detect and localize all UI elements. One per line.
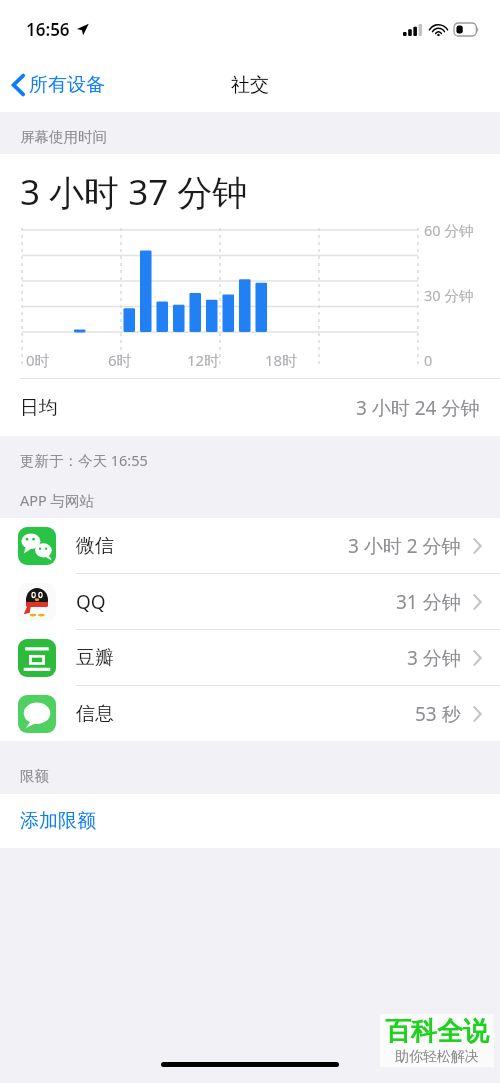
staticText: 3 小时 37 分钟	[20, 168, 248, 216]
staticText: 6时	[108, 350, 132, 370]
staticText: 助你轻松解决	[395, 1048, 479, 1066]
other: WeChat	[18, 527, 56, 565]
staticText: 16:56	[26, 18, 70, 41]
staticText: 30 分钟	[424, 285, 474, 305]
staticText: 12时	[187, 350, 220, 370]
button[interactable]: 添加限额	[0, 794, 500, 848]
staticText: 31 分钟	[396, 589, 461, 615]
staticText: 日均	[20, 396, 58, 420]
staticText: 53 秒	[415, 701, 461, 727]
button[interactable]: WeChat	[0, 518, 500, 573]
staticText: APP 与网站	[20, 490, 95, 510]
button[interactable]: Douban	[0, 630, 500, 685]
button[interactable]: 所有设备	[0, 67, 119, 103]
staticText: 60 分钟	[424, 220, 474, 240]
staticText: 社交	[231, 73, 269, 97]
staticText: 百科全说	[385, 1015, 489, 1048]
other: Douban	[18, 639, 56, 677]
button[interactable]: Messages	[0, 686, 500, 741]
staticText: 限额	[20, 767, 49, 785]
staticText: 0	[424, 350, 433, 370]
staticText: 所有设备	[29, 73, 105, 97]
staticText: 0时	[26, 350, 50, 370]
staticText: 添加限额	[20, 809, 96, 833]
other: Messages	[18, 695, 56, 733]
staticText: 微信	[76, 534, 114, 558]
staticText: 豆瓣	[76, 646, 114, 670]
staticText: QQ	[76, 589, 106, 615]
staticText: 3 分钟	[407, 645, 461, 671]
staticText: 18时	[265, 350, 298, 370]
staticText: 3 小时 2 分钟	[348, 533, 461, 559]
staticText: 屏幕使用时间	[20, 128, 107, 146]
staticText: 更新于：今天 16:55	[20, 450, 148, 470]
button[interactable]: QQ	[0, 574, 500, 629]
staticText: 3 小时 24 分钟	[356, 395, 480, 421]
other: QQ	[18, 583, 56, 621]
staticText: 信息	[76, 702, 114, 726]
button[interactable]: 日均	[0, 379, 500, 436]
